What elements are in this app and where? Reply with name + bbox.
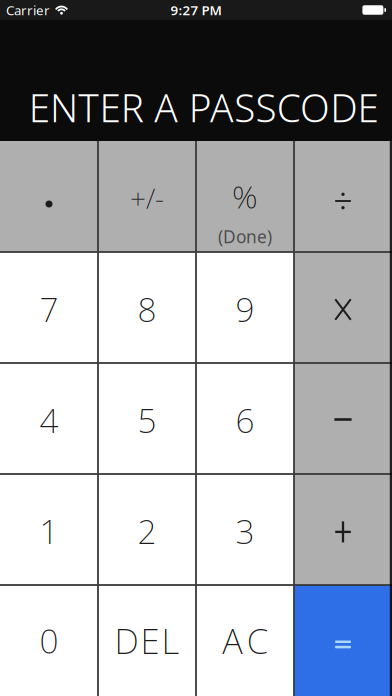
button[interactable]: +/- (98, 141, 196, 252)
button[interactable]: Decimal point (0, 141, 98, 252)
staticText: Carrier (6, 1, 50, 19)
staticText: DEL (114, 617, 179, 663)
staticText: 5 (137, 398, 156, 442)
staticText: 6 (235, 398, 254, 442)
button[interactable]: 8 (98, 252, 196, 363)
staticText: 2 (137, 509, 156, 553)
staticText: 1 (39, 509, 58, 553)
staticText: 9:27 PM (170, 1, 221, 19)
button[interactable]: 7 (0, 252, 98, 363)
button[interactable]: 9 (196, 252, 294, 363)
button[interactable]: 4 (0, 363, 98, 474)
staticText: % (232, 175, 258, 217)
button[interactable]: Divide (294, 141, 392, 252)
staticText: 0 (39, 618, 58, 663)
staticText: 8 (137, 287, 156, 331)
button[interactable]: 5 (98, 363, 196, 474)
button[interactable]: 1 (0, 474, 98, 585)
button[interactable]: Equals (294, 585, 392, 696)
staticText: AC (222, 617, 268, 663)
button[interactable]: % (196, 141, 294, 252)
button[interactable]: Plus (294, 474, 392, 585)
button[interactable]: 2 (98, 474, 196, 585)
button[interactable]: 3 (196, 474, 294, 585)
button[interactable]: Multiply (294, 252, 392, 363)
staticText: 3 (235, 509, 254, 553)
button[interactable]: Minus (294, 363, 392, 474)
staticText: (Done) (218, 225, 272, 248)
staticText: 4 (39, 398, 58, 442)
button[interactable]: 6 (196, 363, 294, 474)
staticText: ENTER A PASSCODE (29, 82, 378, 133)
staticText: +/- (130, 179, 164, 217)
button[interactable]: DEL (98, 585, 196, 696)
button[interactable]: 0 (0, 585, 98, 696)
staticText: 7 (39, 287, 58, 331)
button[interactable]: AC (196, 585, 294, 696)
staticText: 9 (235, 287, 254, 331)
